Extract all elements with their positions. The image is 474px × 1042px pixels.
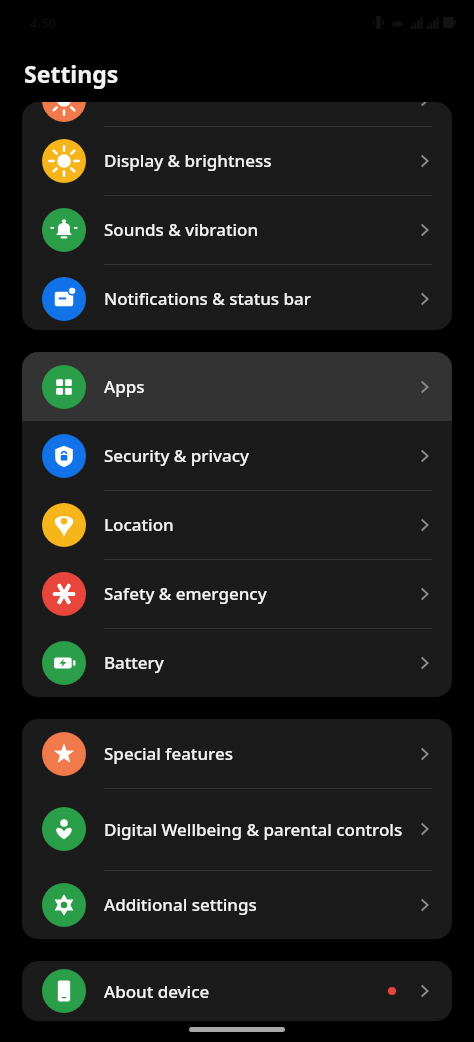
staticText: Digital Wellbeing & parental controls [104,818,414,841]
staticText: Display & brightness [104,149,414,172]
staticText: Safety & emergency [104,582,414,605]
other: Open Battery [414,652,436,674]
other: Open Digital Wellbeing & parental contro… [414,818,436,840]
other: Open Sounds & vibration [414,219,436,241]
button[interactable]: Sounds & vibration [22,195,452,264]
button[interactable]: Apps [22,352,452,421]
staticText: Location [104,513,414,536]
staticText: Sounds & vibration [104,218,414,241]
button[interactable]: Battery [22,628,452,697]
button[interactable]: Open [22,102,452,134]
button[interactable]: About device [22,961,452,1021]
button[interactable]: Notifications & status bar [22,264,452,330]
staticText: Battery [104,651,414,674]
other: Open Security & privacy [414,445,436,467]
button[interactable]: Additional settings [22,870,452,939]
staticText: Apps [104,375,414,398]
other: Open Notifications & status bar [414,288,436,310]
button[interactable]: Location [22,490,452,559]
other: Open [414,102,436,111]
button[interactable]: Security & privacy [22,421,452,490]
other: Open Special features [414,743,436,765]
staticText: Security & privacy [104,444,414,467]
other: Open About device [414,980,436,1002]
button[interactable]: Digital Wellbeing & parental controls [22,788,452,870]
button[interactable]: Display & brightness [22,126,452,195]
staticText: Additional settings [104,893,414,916]
staticText: 4:50 [30,14,56,32]
other: Open Apps [414,376,436,398]
staticText: Settings [24,58,119,89]
button[interactable]: Safety & emergency [22,559,452,628]
button[interactable]: Special features [22,719,452,788]
other: Open Additional settings [414,894,436,916]
other: Open Safety & emergency [414,583,436,605]
other: Open Display & brightness [414,150,436,172]
other: Open Location [414,514,436,536]
staticText: About device [104,980,388,1003]
staticText: Special features [104,742,414,765]
staticText: Notifications & status bar [104,287,414,310]
